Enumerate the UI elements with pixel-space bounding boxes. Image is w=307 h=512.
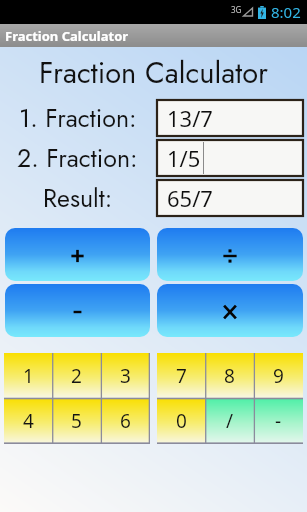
staticText: 3: [120, 363, 131, 389]
button[interactable]: Add: [5, 228, 150, 281]
staticText: 3G: [231, 4, 242, 15]
button[interactable]: 7: [157, 353, 205, 398]
button[interactable]: 4: [4, 398, 52, 444]
button[interactable]: 0: [157, 398, 205, 444]
staticText: Result:: [43, 180, 113, 216]
staticText: 2: [71, 363, 82, 389]
button[interactable]: 1/5: [157, 140, 303, 176]
staticText: -: [275, 408, 282, 434]
button[interactable]: 6: [101, 398, 150, 444]
staticText: /: [226, 408, 234, 434]
staticText: 65/7: [167, 183, 213, 213]
button[interactable]: 13/7: [157, 100, 303, 136]
button[interactable]: 2: [52, 353, 101, 398]
staticText: 8:02: [271, 2, 301, 22]
staticText: 1: [23, 363, 34, 389]
button[interactable]: 1. Fraction:: [6, 100, 149, 136]
button[interactable]: 65/7: [157, 180, 303, 216]
staticText: 5: [71, 408, 82, 434]
button[interactable]: 8: [205, 353, 254, 398]
button[interactable]: Result:: [6, 180, 149, 216]
staticText: 4: [23, 408, 34, 434]
staticText: 2. Fraction:: [17, 140, 138, 176]
button[interactable]: /: [205, 398, 254, 444]
staticText: 7: [176, 363, 187, 389]
staticText: Fraction Calculator: [5, 27, 129, 45]
button[interactable]: Divide: [157, 228, 303, 281]
staticText: 6: [120, 408, 131, 434]
staticText: 1/5: [167, 143, 201, 173]
staticText: 9: [273, 363, 284, 389]
button[interactable]: 3: [101, 353, 150, 398]
button[interactable]: Subtract: [5, 284, 150, 337]
button[interactable]: 2. Fraction:: [6, 140, 149, 176]
staticText: 8: [224, 363, 235, 389]
staticText: 13/7: [167, 103, 213, 133]
button[interactable]: -: [254, 398, 303, 444]
staticText: 1. Fraction:: [19, 100, 137, 136]
button[interactable]: 5: [52, 398, 101, 444]
staticText: 0: [176, 408, 187, 434]
button[interactable]: Multiply: [157, 284, 303, 337]
button[interactable]: 1: [4, 353, 52, 398]
button[interactable]: 9: [254, 353, 303, 398]
staticText: Fraction Calculator: [0, 52, 307, 94]
